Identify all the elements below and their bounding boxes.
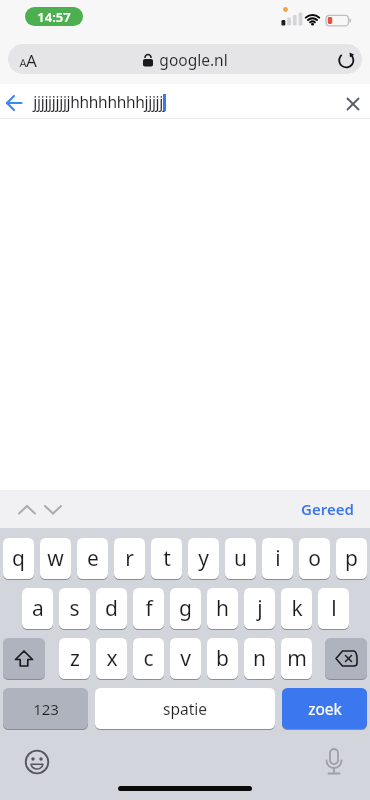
- staticText: y: [198, 544, 209, 573]
- button[interactable]: [8, 44, 362, 74]
- staticText: spatie: [163, 698, 207, 719]
- button[interactable]: zoek: [282, 688, 367, 729]
- button[interactable]: [17, 503, 39, 517]
- button[interactable]: s: [59, 588, 90, 629]
- staticText: u: [234, 544, 247, 573]
- button[interactable]: h: [207, 588, 238, 629]
- staticText: g: [179, 594, 192, 623]
- staticText: q: [12, 544, 25, 573]
- button[interactable]: o: [299, 538, 330, 579]
- staticText: A: [19, 55, 27, 70]
- button[interactable]: x: [96, 638, 127, 679]
- button[interactable]: Gereed: [295, 490, 360, 528]
- button[interactable]: [338, 52, 355, 69]
- staticText: google.nl: [159, 49, 228, 70]
- staticText: Gereed: [301, 499, 354, 519]
- button[interactable]: f: [133, 588, 164, 629]
- staticText: d: [105, 594, 118, 623]
- staticText: A: [26, 49, 37, 72]
- button[interactable]: v: [170, 638, 201, 679]
- button[interactable]: n: [244, 638, 275, 679]
- button[interactable]: u: [225, 538, 256, 579]
- button[interactable]: a: [22, 588, 53, 629]
- button[interactable]: y: [188, 538, 219, 579]
- button[interactable]: spatie: [95, 688, 275, 729]
- button[interactable]: d: [96, 588, 127, 629]
- staticText: h: [216, 594, 229, 623]
- staticText: i: [275, 544, 281, 573]
- button[interactable]: m: [281, 638, 312, 679]
- button[interactable]: r: [114, 538, 145, 579]
- button[interactable]: w: [40, 538, 71, 579]
- staticText: w: [47, 544, 64, 573]
- button[interactable]: l: [318, 588, 349, 629]
- button[interactable]: [43, 503, 65, 517]
- button[interactable]: [325, 748, 343, 776]
- staticText: k: [291, 594, 303, 623]
- button[interactable]: q: [3, 538, 34, 579]
- button[interactable]: k: [281, 588, 312, 629]
- staticText: f: [145, 594, 153, 623]
- button[interactable]: t: [151, 538, 182, 579]
- button[interactable]: z: [59, 638, 90, 679]
- staticText: m: [287, 644, 307, 673]
- staticText: b: [216, 644, 229, 673]
- staticText: z: [70, 644, 80, 673]
- button[interactable]: [325, 638, 367, 679]
- staticText: s: [69, 594, 80, 623]
- button[interactable]: p: [336, 538, 367, 579]
- staticText: t: [163, 544, 171, 573]
- button[interactable]: [5, 94, 23, 112]
- staticText: p: [345, 544, 358, 573]
- button[interactable]: c: [133, 638, 164, 679]
- staticText: j: [257, 594, 263, 623]
- button[interactable]: [25, 750, 49, 774]
- button[interactable]: [346, 97, 360, 111]
- staticText: zoek: [308, 698, 342, 719]
- staticText: a: [32, 594, 44, 623]
- staticText: c: [143, 644, 154, 673]
- button[interactable]: b: [207, 638, 238, 679]
- staticText: 14:57: [37, 8, 71, 26]
- button[interactable]: 123: [3, 688, 88, 729]
- staticText: l: [331, 594, 337, 623]
- button[interactable]: i: [262, 538, 293, 579]
- staticText: o: [308, 544, 321, 573]
- button[interactable]: j: [244, 588, 275, 629]
- staticText: e: [87, 544, 99, 573]
- staticText: x: [106, 644, 118, 673]
- button[interactable]: g: [170, 588, 201, 629]
- button[interactable]: [3, 638, 45, 679]
- staticText: r: [125, 544, 134, 573]
- staticText: v: [180, 644, 191, 673]
- button[interactable]: 14:57: [25, 7, 83, 26]
- staticText: n: [253, 644, 266, 673]
- button[interactable]: e: [77, 538, 108, 579]
- staticText: 123: [33, 699, 59, 719]
- staticText: jjjjjjjjjjhhhhhhhhjjjjjj: [33, 91, 167, 112]
